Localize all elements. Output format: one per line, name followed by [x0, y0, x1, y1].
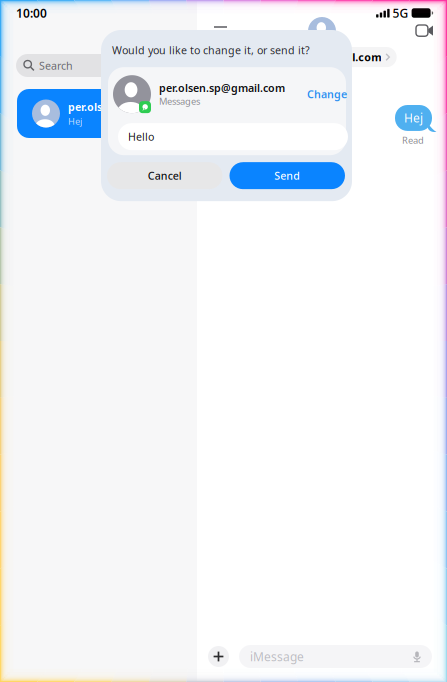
button[interactable]: FaceTime video call: [408, 17, 441, 44]
staticText: 5G: [393, 5, 409, 21]
button[interactable]: per.olsen.sp@gmail.com: [17, 89, 191, 138]
button[interactable]: Send: [229, 162, 345, 189]
staticText: Messages: [159, 95, 200, 107]
button[interactable]: Add attachment: [208, 646, 229, 667]
staticText: Hej: [68, 115, 82, 127]
staticText: Hello: [128, 130, 154, 144]
staticText: 10:00: [16, 5, 47, 21]
staticText: Search: [39, 58, 73, 73]
staticText: Cancel: [148, 169, 182, 183]
staticText: Would you like to change it, or send it?: [112, 43, 310, 57]
staticText: per.olsen.sp@gmail.com: [68, 100, 175, 114]
button[interactable]: Cancel: [107, 162, 222, 189]
button[interactable]: Change: [303, 87, 347, 101]
button[interactable]: per.olsen.sp@gmail.com: [247, 0, 397, 67]
staticText: Hej: [404, 110, 423, 126]
button[interactable]: Show sidebar: [205, 17, 236, 44]
staticText: per.olsen.sp@gmail.com: [254, 50, 381, 64]
staticText: Send: [274, 169, 300, 183]
staticText: per.olsen.sp@gmail.com: [159, 81, 285, 95]
staticText: iMessage: [250, 648, 304, 664]
button[interactable]: Search: [16, 54, 187, 77]
staticText: Change: [307, 87, 347, 101]
staticText: Read: [402, 134, 424, 146]
